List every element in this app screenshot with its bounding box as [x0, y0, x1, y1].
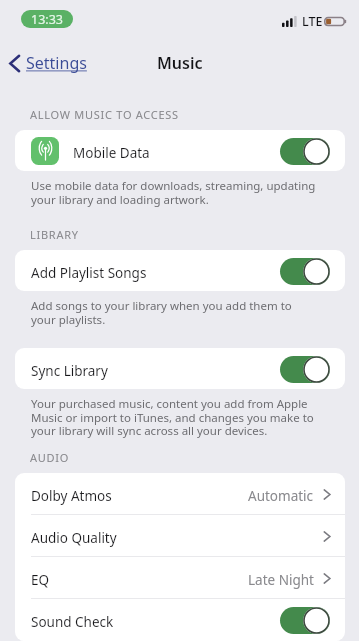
- staticText: Late Night: [248, 571, 314, 589]
- staticText: Sound Check: [31, 613, 114, 631]
- staticText: Settings: [26, 52, 87, 74]
- button[interactable]: Audio Quality: [15, 515, 345, 556]
- button[interactable]: Toggle: [280, 258, 330, 285]
- staticText: Sync Library: [31, 362, 108, 380]
- button[interactable]: Sync Library: [15, 348, 345, 389]
- staticText: Dolby Atmos: [31, 487, 112, 505]
- button[interactable]: Dolby Atmos: [15, 473, 345, 514]
- staticText: LTE: [302, 13, 323, 30]
- staticText: AUDIO: [30, 450, 70, 465]
- staticText: Add Playlist Songs: [31, 264, 147, 282]
- staticText: Mobile Data: [73, 144, 150, 162]
- staticText: Use mobile data for downloads, streaming…: [31, 178, 316, 207]
- staticText: Automatic: [248, 487, 314, 505]
- button[interactable]: Add Playlist Songs: [15, 250, 345, 291]
- button[interactable]: EQ: [15, 557, 345, 598]
- staticText: ALLOW MUSIC TO ACCESS: [30, 107, 179, 122]
- other: Open: [323, 573, 330, 584]
- other: Open: [323, 489, 330, 500]
- staticText: EQ: [31, 571, 50, 589]
- staticText: 13:33: [31, 11, 63, 28]
- staticText: Your purchased music, content you add fr…: [31, 396, 316, 438]
- button[interactable]: Sound Check: [15, 599, 345, 640]
- button[interactable]: Toggle: [280, 138, 330, 165]
- staticText: LIBRARY: [30, 227, 79, 242]
- staticText: Add songs to your library when you add t…: [31, 298, 316, 327]
- staticText: Audio Quality: [31, 529, 117, 547]
- button[interactable]: Mobile Data: [15, 130, 345, 171]
- other: Open: [323, 531, 330, 542]
- staticText: Music: [157, 52, 203, 74]
- button[interactable]: Toggle: [280, 356, 330, 383]
- button[interactable]: Settings: [0, 48, 95, 78]
- button[interactable]: Toggle: [280, 607, 330, 634]
